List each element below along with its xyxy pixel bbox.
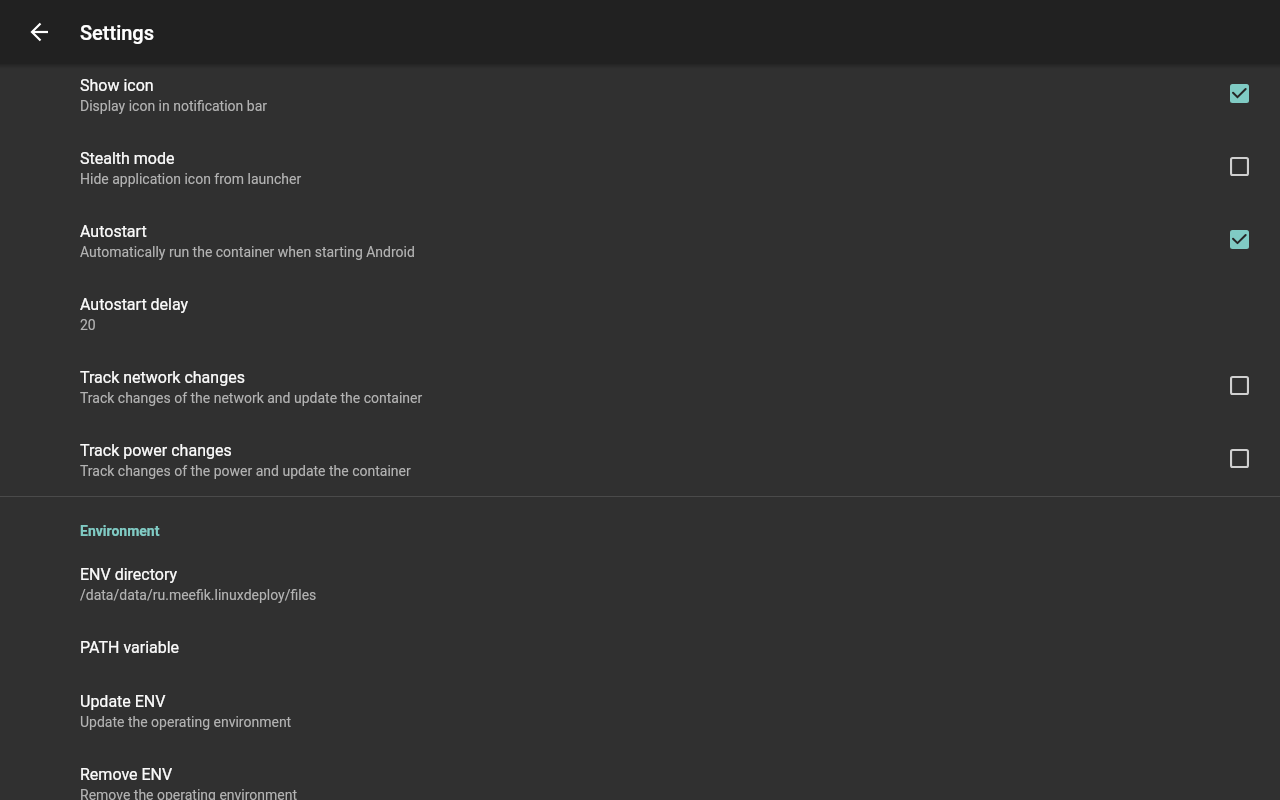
button[interactable]: Update ENV [0, 674, 1280, 747]
staticText: Track network changes [80, 368, 245, 387]
button[interactable]: Autostart delay [0, 277, 1280, 350]
button[interactable]: PATH variable [0, 620, 1280, 674]
button[interactable]: Show icon [0, 58, 1280, 131]
staticText: Update ENV [80, 692, 166, 711]
staticText: Update the operating environment [80, 714, 292, 730]
staticText: Autostart [80, 222, 147, 241]
button[interactable]: Checked, toggle off [1224, 78, 1254, 108]
staticText: Stealth mode [80, 149, 175, 168]
staticText: Settings [80, 21, 155, 44]
button[interactable]: Unchecked, toggle on [1224, 443, 1254, 473]
button[interactable]: Navigate up [0, 0, 64, 64]
staticText: Hide application icon from launcher [80, 171, 302, 187]
button[interactable]: Autostart [0, 204, 1280, 277]
staticText: Autostart delay [80, 295, 189, 314]
staticText: Display icon in notification bar [80, 98, 268, 114]
staticText: PATH variable [80, 638, 180, 657]
button[interactable]: Track network changes [0, 350, 1280, 423]
staticText: Environment [80, 523, 160, 539]
staticText: Track power changes [80, 441, 232, 460]
staticText: Remove ENV [80, 765, 173, 784]
button[interactable]: Checked, toggle off [1224, 224, 1254, 254]
button[interactable]: Track power changes [0, 423, 1280, 496]
staticText: ENV directory [80, 565, 178, 584]
staticText: /data/data/ru.meefik.linuxdeploy/files [80, 587, 317, 603]
button[interactable]: Unchecked, toggle on [1224, 151, 1254, 181]
staticText: Track changes of the power and update th… [80, 463, 411, 479]
staticText: Automatically run the container when sta… [80, 244, 415, 260]
button[interactable]: Unchecked, toggle on [1224, 370, 1254, 400]
button[interactable]: Stealth mode [0, 131, 1280, 204]
staticText: Remove the operating environment [80, 787, 298, 800]
staticText: 20 [80, 317, 96, 333]
staticText: Show icon [80, 76, 154, 95]
button[interactable]: ENV directory [0, 547, 1280, 620]
staticText: Track changes of the network and update … [80, 390, 423, 406]
button[interactable]: Remove ENV [0, 747, 1280, 800]
